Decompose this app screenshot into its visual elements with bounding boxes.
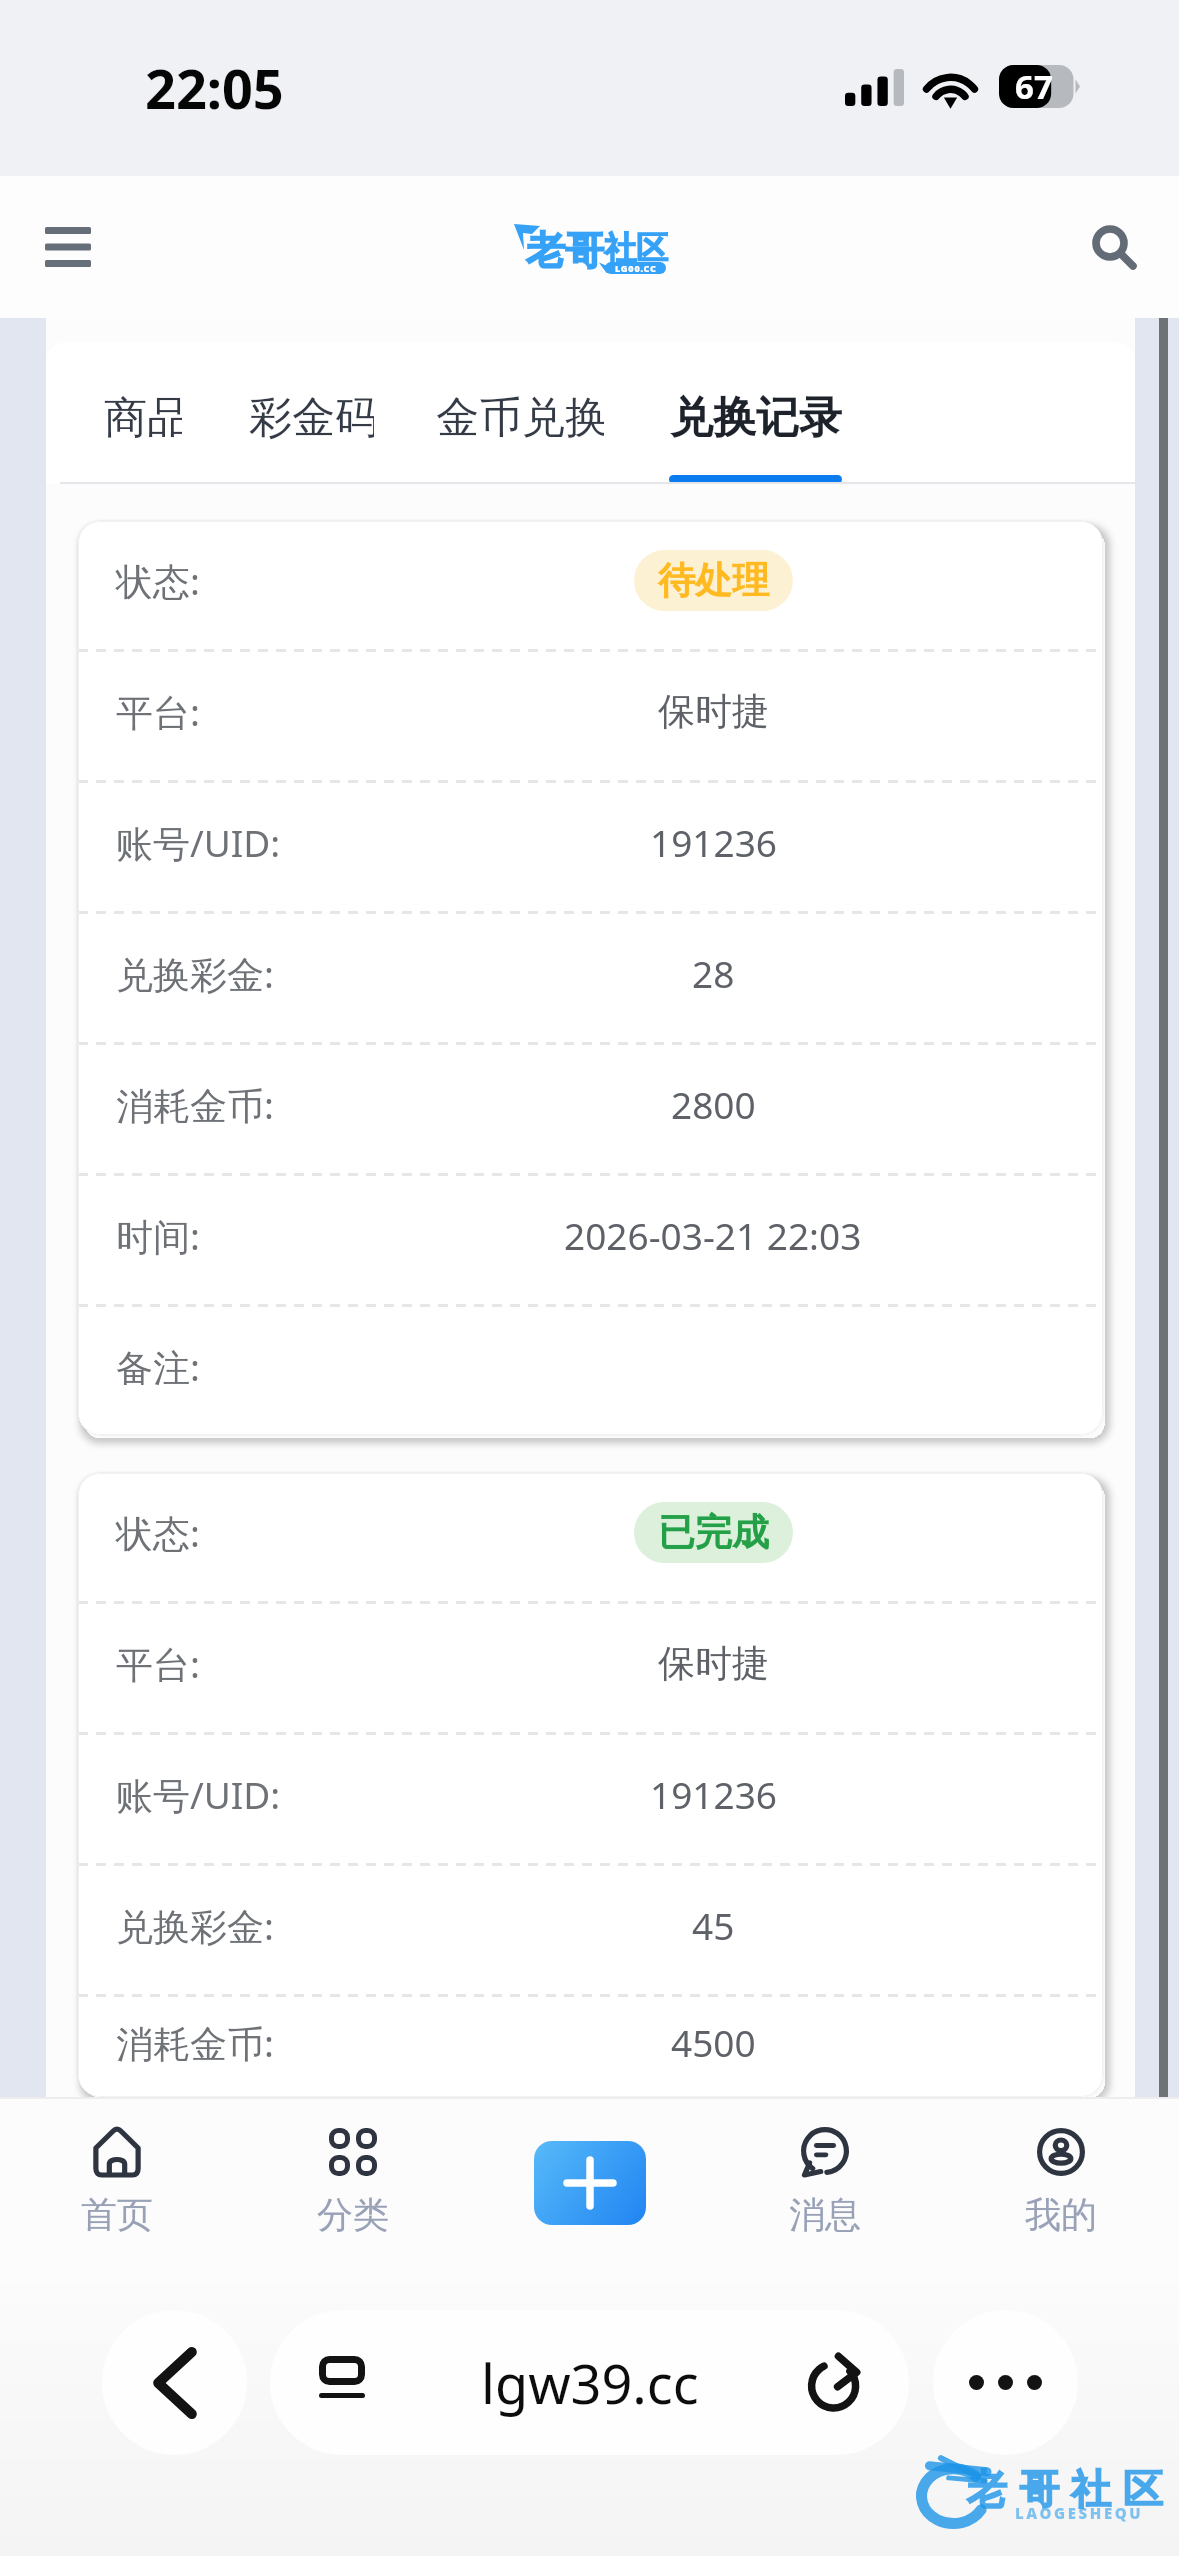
staticText: 商品 xyxy=(104,391,182,445)
button[interactable]: 状态: xyxy=(78,1473,1103,2097)
staticText: LG00.CC xyxy=(615,262,657,274)
button[interactable]: 我的 xyxy=(971,2127,1151,2237)
staticText: 兑换彩金: xyxy=(116,948,274,999)
staticText: 兑换记录 xyxy=(670,391,842,445)
staticText: 保时捷 xyxy=(658,1640,769,1687)
button[interactable]: Back xyxy=(102,2310,247,2455)
staticText: 我的 xyxy=(1025,2192,1097,2237)
staticText: 已完成 xyxy=(658,1509,769,1556)
staticText: 消耗金币: xyxy=(116,2017,274,2068)
other: Reload xyxy=(812,2350,866,2408)
button[interactable]: 金币兑换 xyxy=(436,342,604,484)
button[interactable]: 首页 xyxy=(27,2127,207,2237)
staticText: 2800 xyxy=(671,1079,756,1129)
staticText: 分类 xyxy=(317,2192,389,2237)
staticText: 平台: xyxy=(116,686,200,737)
staticText: LAOGESHEQU xyxy=(1015,2503,1144,2523)
staticText: 老哥社区 xyxy=(961,2464,1169,2514)
staticText: 首页 xyxy=(81,2192,153,2237)
staticText: 状态: xyxy=(116,1507,200,1558)
staticText: 191236 xyxy=(650,1769,777,1819)
button[interactable]: 彩金码 xyxy=(249,342,374,484)
staticText: 4500 xyxy=(671,2017,756,2067)
button[interactable]: Search xyxy=(1060,196,1168,298)
staticText: 平台: xyxy=(116,1638,200,1689)
staticText: 金币兑换 xyxy=(436,391,604,445)
staticText: 191236 xyxy=(650,817,777,867)
staticText: 22:05 xyxy=(145,51,284,125)
staticText: 彩金码 xyxy=(249,391,374,445)
staticText: 老哥 xyxy=(526,226,604,275)
staticText: 兑换彩金: xyxy=(116,1900,274,1951)
staticText: 社区 xyxy=(604,228,668,268)
button[interactable]: 状态: xyxy=(78,521,1103,1435)
button[interactable]: More xyxy=(933,2310,1078,2455)
staticText: 消耗金币: xyxy=(116,1079,274,1130)
button[interactable]: 分类 xyxy=(263,2127,443,2237)
button[interactable]: 商品 xyxy=(104,342,182,484)
staticText: 备注: xyxy=(116,1341,200,1392)
staticText: 时间: xyxy=(116,1210,200,1261)
staticText: 待处理 xyxy=(658,557,769,604)
staticText: 45 xyxy=(692,1900,735,1950)
staticText: 保时捷 xyxy=(658,688,769,735)
staticText: 账号/UID: xyxy=(116,1769,281,1820)
button[interactable]: lgw39.cc xyxy=(270,2310,909,2455)
button[interactable]: Menu xyxy=(14,196,122,298)
staticText: 消息 xyxy=(789,2192,861,2237)
button[interactable]: 消息 xyxy=(735,2127,915,2237)
other: Reader view xyxy=(319,2356,365,2398)
staticText: 28 xyxy=(692,948,735,998)
button[interactable]: Add xyxy=(534,2141,646,2225)
staticText: 67 xyxy=(1015,64,1053,107)
button[interactable]: 兑换记录 xyxy=(669,342,842,484)
staticText: 状态: xyxy=(116,555,200,606)
staticText: 账号/UID: xyxy=(116,817,281,868)
staticText: 2026-03-21 22:03 xyxy=(564,1210,862,1260)
staticText: lgw39.cc xyxy=(481,2346,699,2420)
